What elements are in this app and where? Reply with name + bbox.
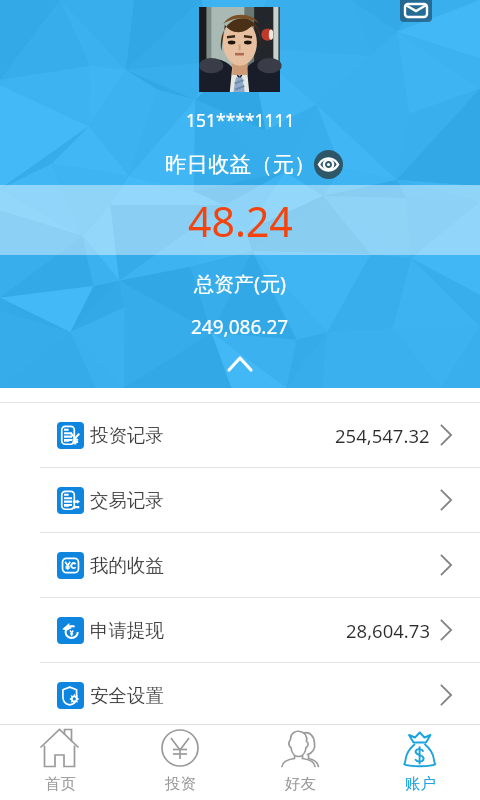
staticText: 账户: [405, 774, 436, 794]
button[interactable]: 我的收益: [0, 533, 480, 598]
button[interactable]: Messages: [400, 0, 432, 22]
staticText: 交易记录: [90, 489, 164, 512]
button[interactable]: 交易记录: [0, 468, 480, 533]
staticText: 我的收益: [90, 554, 164, 577]
staticText: 安全设置: [90, 684, 164, 707]
button[interactable]: 投资: [120, 725, 240, 800]
staticText: 28,604.73: [346, 618, 430, 643]
button[interactable]: 账户: [360, 725, 480, 800]
staticText: 249,086.27: [191, 314, 289, 340]
button[interactable]: 好友: [240, 725, 360, 800]
button[interactable]: Toggle amount visibility: [314, 150, 343, 179]
staticText: 昨日收益（元）: [165, 151, 316, 178]
staticText: 投资: [165, 774, 196, 794]
staticText: 好友: [285, 774, 316, 794]
staticText: 申请提现: [90, 619, 164, 642]
button[interactable]: 投资记录: [0, 403, 480, 468]
staticText: 总资产(元): [194, 270, 286, 297]
button[interactable]: Profile photo: [199, 7, 280, 92]
button[interactable]: 安全设置: [0, 663, 480, 728]
staticText: 254,547.32: [335, 423, 430, 448]
staticText: 首页: [45, 774, 76, 794]
staticText: 151****1111: [186, 108, 295, 132]
button[interactable]: 首页: [0, 725, 120, 800]
button[interactable]: 申请提现: [0, 598, 480, 663]
button[interactable]: Collapse: [218, 352, 262, 376]
staticText: 48.24: [188, 193, 293, 249]
staticText: 投资记录: [90, 424, 164, 447]
